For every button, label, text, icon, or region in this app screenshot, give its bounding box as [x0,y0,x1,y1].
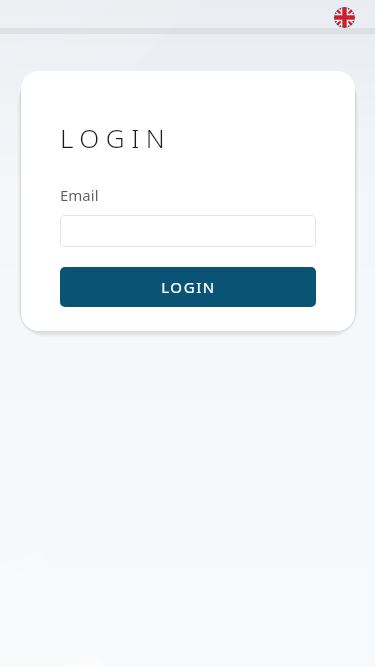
button[interactable]: Change language [334,7,355,28]
button[interactable]: LOGIN [60,267,316,307]
staticText: LOGIN [161,277,216,297]
staticText: LOGIN [60,120,172,155]
staticText: Email [60,185,99,205]
button[interactable]: Email input [60,215,316,247]
